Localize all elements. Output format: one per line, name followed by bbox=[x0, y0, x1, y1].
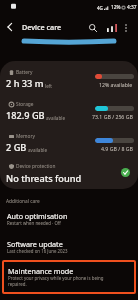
staticText: 73.1 GB / 256 GB bbox=[92, 113, 133, 120]
staticText: 12% bbox=[111, 4, 121, 11]
staticText: No threats found bbox=[6, 172, 82, 185]
staticText: 4G bbox=[97, 5, 103, 11]
button[interactable]: Usage statistics bbox=[102, 18, 121, 37]
button[interactable]: Auto optimisation bbox=[0, 207, 138, 235]
button[interactable]: Device protection bbox=[0, 157, 138, 189]
staticText: Device protection bbox=[16, 163, 56, 170]
button[interactable]: Battery bbox=[0, 61, 138, 93]
staticText: 2 GB bbox=[6, 141, 27, 154]
button[interactable]: Software update bbox=[0, 235, 138, 263]
staticText: Battery bbox=[16, 69, 33, 76]
staticText: 4:37 bbox=[127, 4, 137, 11]
staticText: Maintenance mode bbox=[8, 266, 74, 276]
button[interactable]: More options bbox=[116, 18, 135, 37]
staticText: 4.9 GB / 8 GB bbox=[101, 145, 133, 152]
staticText: Additional care bbox=[6, 198, 40, 205]
button[interactable]: Storage bbox=[0, 93, 138, 125]
button[interactable]: Back bbox=[0, 17, 20, 37]
button[interactable]: Search bbox=[83, 18, 102, 37]
button[interactable]: Memory bbox=[0, 125, 138, 157]
staticText: Restart when needed · Off bbox=[7, 220, 61, 226]
staticText: Protect your privacy while your phone is… bbox=[8, 275, 120, 287]
staticText: Software update bbox=[7, 239, 63, 249]
staticText: Storage bbox=[16, 101, 34, 108]
staticText: Auto optimisation bbox=[7, 211, 68, 221]
staticText: left bbox=[45, 83, 53, 89]
staticText: Memory bbox=[16, 133, 35, 140]
staticText: 182.9 GB bbox=[6, 109, 45, 122]
button[interactable]: Maintenance mode bbox=[2, 260, 136, 294]
staticText: 12% available bbox=[99, 81, 133, 88]
staticText: available bbox=[28, 147, 48, 153]
staticText: Last checked on 16 June 2023 bbox=[7, 248, 68, 254]
staticText: 2 h 33 m bbox=[6, 77, 44, 90]
staticText: available bbox=[46, 115, 66, 121]
staticText: Device care bbox=[22, 22, 62, 32]
